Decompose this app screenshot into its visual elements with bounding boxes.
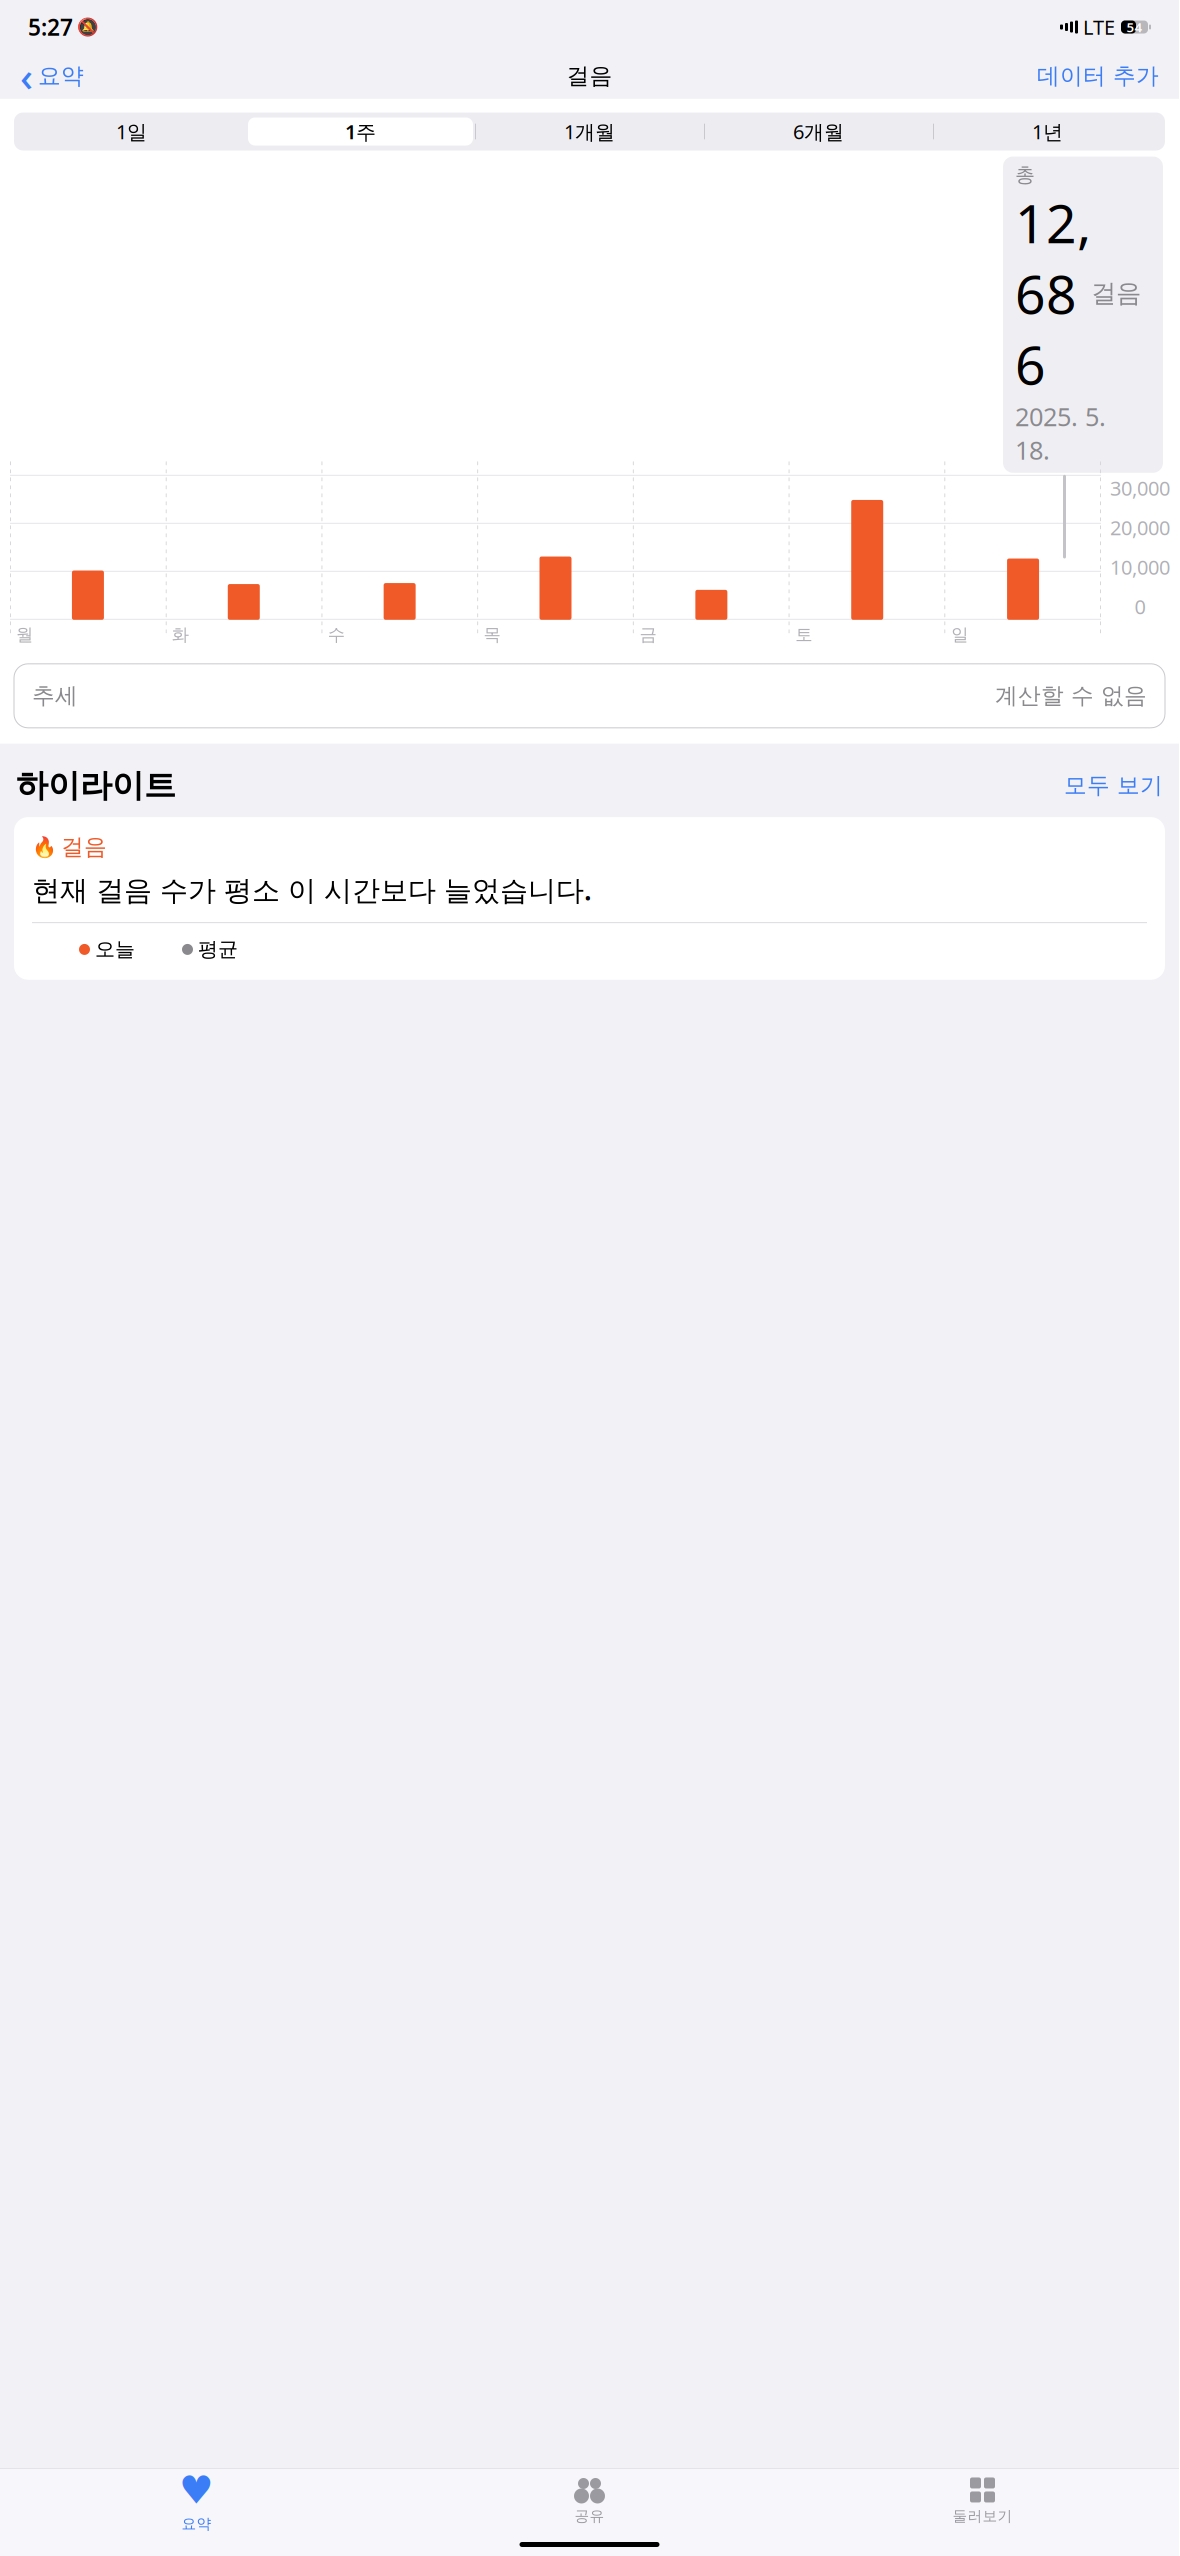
- staticText: 걸음: [61, 833, 107, 861]
- staticText: 월: [16, 624, 33, 645]
- staticText: 0: [1134, 593, 1145, 620]
- staticText: 걸음: [566, 62, 612, 90]
- button[interactable]: ‹: [16, 43, 88, 108]
- staticText: ♥: [179, 2468, 214, 2512]
- staticText: 요약: [38, 62, 84, 90]
- staticText: ‹: [20, 49, 33, 102]
- staticText: 54: [1126, 18, 1142, 36]
- button[interactable]: 1일: [17, 115, 246, 147]
- staticText: 토: [795, 624, 812, 645]
- staticText: 걸음: [1091, 278, 1141, 309]
- staticText: 요약: [181, 2515, 211, 2533]
- staticText: 데이터 추가: [1037, 62, 1159, 90]
- button[interactable]: 둘러보기: [786, 2468, 1179, 2525]
- staticText: 1주: [345, 118, 376, 145]
- staticText: 둘러보기: [952, 2507, 1012, 2525]
- staticText: 30,000: [1110, 475, 1170, 501]
- staticText: LTE: [1083, 14, 1115, 40]
- staticText: 1년: [1032, 118, 1063, 145]
- staticText: 12,686: [1015, 187, 1091, 400]
- button[interactable]: 1개월: [475, 115, 704, 147]
- staticText: 목: [484, 624, 501, 645]
- staticText: 2025. 5. 18.: [1015, 399, 1106, 467]
- button[interactable]: ♥: [0, 2460, 393, 2533]
- staticText: 수: [328, 624, 345, 645]
- button[interactable]: 1년: [933, 115, 1162, 147]
- staticText: 5:27: [28, 12, 73, 42]
- staticText: 화: [172, 624, 189, 645]
- staticText: 1개월: [564, 118, 615, 145]
- staticText: 평균: [198, 937, 238, 962]
- staticText: 추세: [32, 682, 78, 710]
- staticText: 1일: [116, 118, 147, 145]
- button[interactable]: 데이터 추가: [1033, 56, 1163, 96]
- staticText: 금: [639, 624, 656, 645]
- staticText: 현재 걸음 수가 평소 이 시간보다 늘었습니다.: [32, 871, 592, 908]
- staticText: 20,000: [1110, 514, 1170, 541]
- staticText: 계산할 수 없음: [995, 682, 1147, 710]
- button[interactable]: 모두 보기: [1064, 768, 1163, 803]
- button[interactable]: 🔥: [14, 817, 1165, 980]
- button[interactable]: 공유: [393, 2468, 786, 2525]
- button[interactable]: 6개월: [704, 115, 933, 147]
- button[interactable]: 1주: [246, 115, 475, 147]
- staticText: 하이라이트: [16, 766, 176, 805]
- staticText: 공유: [574, 2507, 604, 2525]
- staticText: 오늘: [95, 937, 135, 962]
- staticText: 일: [951, 624, 968, 645]
- staticText: 총: [1015, 162, 1035, 187]
- staticText: 모두 보기: [1064, 772, 1163, 799]
- staticText: 🔕: [77, 17, 99, 37]
- staticText: 10,000: [1110, 554, 1170, 580]
- staticText: 🔥: [32, 836, 57, 858]
- staticText: 6개월: [793, 118, 844, 145]
- button[interactable]: 추세: [14, 664, 1165, 728]
